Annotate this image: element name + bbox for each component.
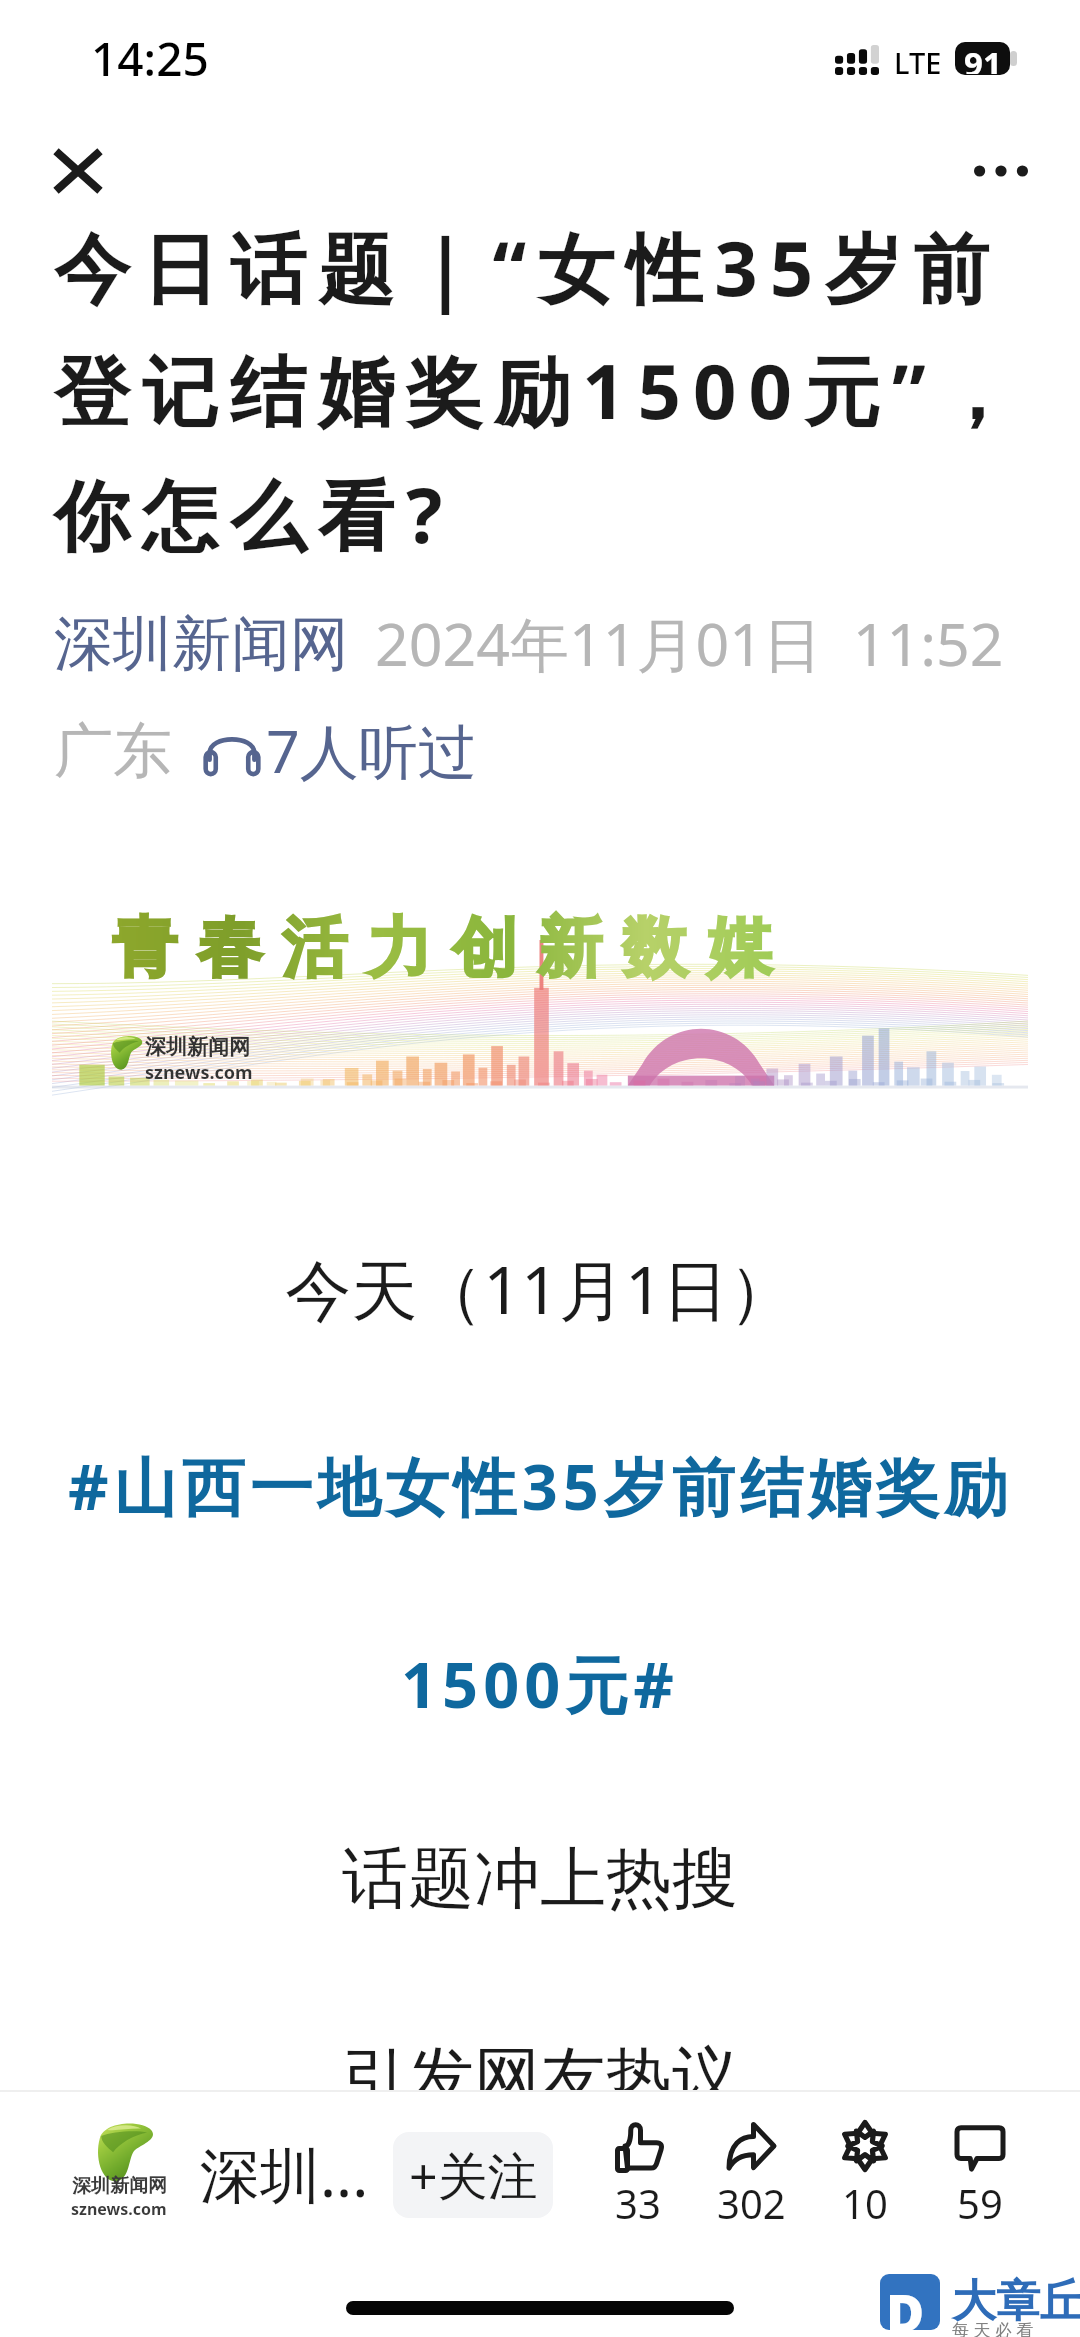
staticText: 深圳新闻网: [54, 607, 349, 681]
button[interactable]: Like: [582, 2112, 694, 2238]
button[interactable]: Publisher: [58, 2118, 180, 2214]
staticText: 1500元#: [0, 1641, 1080, 1727]
button[interactable]: +关注: [393, 2132, 553, 2218]
staticText: 今天（11月1日）: [0, 1243, 1080, 1333]
staticText: 2024年11月01日 11:52: [375, 603, 1004, 684]
staticText: 302: [717, 2176, 786, 2230]
staticText: #山西一地女性35岁前结婚奖励: [0, 1443, 1080, 1529]
staticText: +关注: [409, 2141, 538, 2209]
staticText: sznews.com: [71, 2198, 167, 2220]
staticText: 14:25: [91, 27, 209, 90]
staticText: 每 天 必 看: [952, 2318, 1034, 2337]
button[interactable]: Close: [33, 126, 123, 216]
staticText: LTE: [894, 43, 942, 82]
staticText: 7人听过: [266, 710, 477, 791]
staticText: 大章丘: [952, 2274, 1080, 2329]
staticText: 引发网友热议: [0, 2036, 1080, 2119]
staticText: 59: [957, 2176, 1003, 2230]
staticText: sznews.com: [145, 1060, 253, 1085]
staticText: 今日话题｜“女性35岁前 登记结婚奖励1500元”， 你怎么看?: [54, 215, 1026, 566]
staticText: 深圳新闻网: [72, 2174, 167, 2198]
staticText: 33: [615, 2176, 661, 2230]
button[interactable]: Comment: [924, 2112, 1036, 2238]
staticText: 话题冲上热搜: [0, 1837, 1080, 1920]
button[interactable]: More options: [956, 126, 1046, 216]
staticText: 广东: [54, 714, 172, 788]
staticText: 青春活力创新数媒: [102, 907, 782, 989]
button[interactable]: 深圳...: [200, 2133, 369, 2215]
button[interactable]: Reward: [809, 2112, 921, 2238]
staticText: 深圳新闻网: [145, 1034, 250, 1060]
staticText: 10: [842, 2176, 888, 2230]
button[interactable]: Share: [695, 2112, 807, 2238]
staticText: D: [886, 2276, 925, 2330]
staticText: 91: [964, 42, 1002, 74]
